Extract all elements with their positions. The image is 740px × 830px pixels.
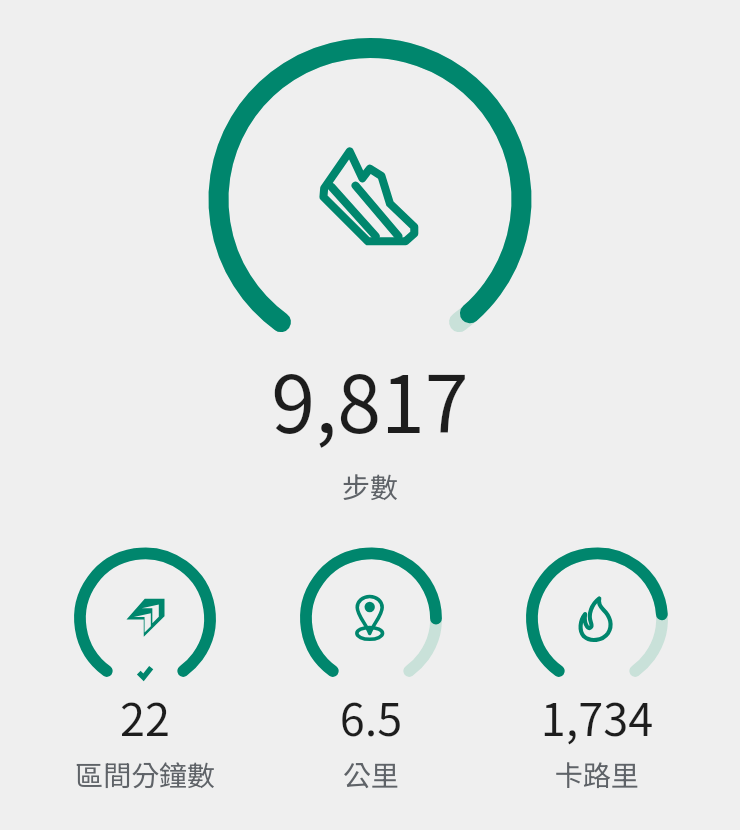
button[interactable]: Steps goal ring — [208, 38, 532, 362]
staticText: 9,817 — [0, 341, 740, 455]
button[interactable]: 22 — [32, 540, 258, 800]
staticText: 區間分鐘數 — [32, 754, 258, 795]
button[interactable]: 6.5 — [258, 540, 484, 800]
staticText: 1,734 — [484, 684, 710, 749]
button[interactable]: 1,734 — [484, 540, 710, 800]
staticText: 6.5 — [258, 684, 484, 749]
staticText: 步數 — [0, 466, 740, 507]
staticText: 卡路里 — [484, 754, 710, 795]
staticText: 22 — [32, 684, 258, 749]
staticText: 公里 — [258, 754, 484, 795]
